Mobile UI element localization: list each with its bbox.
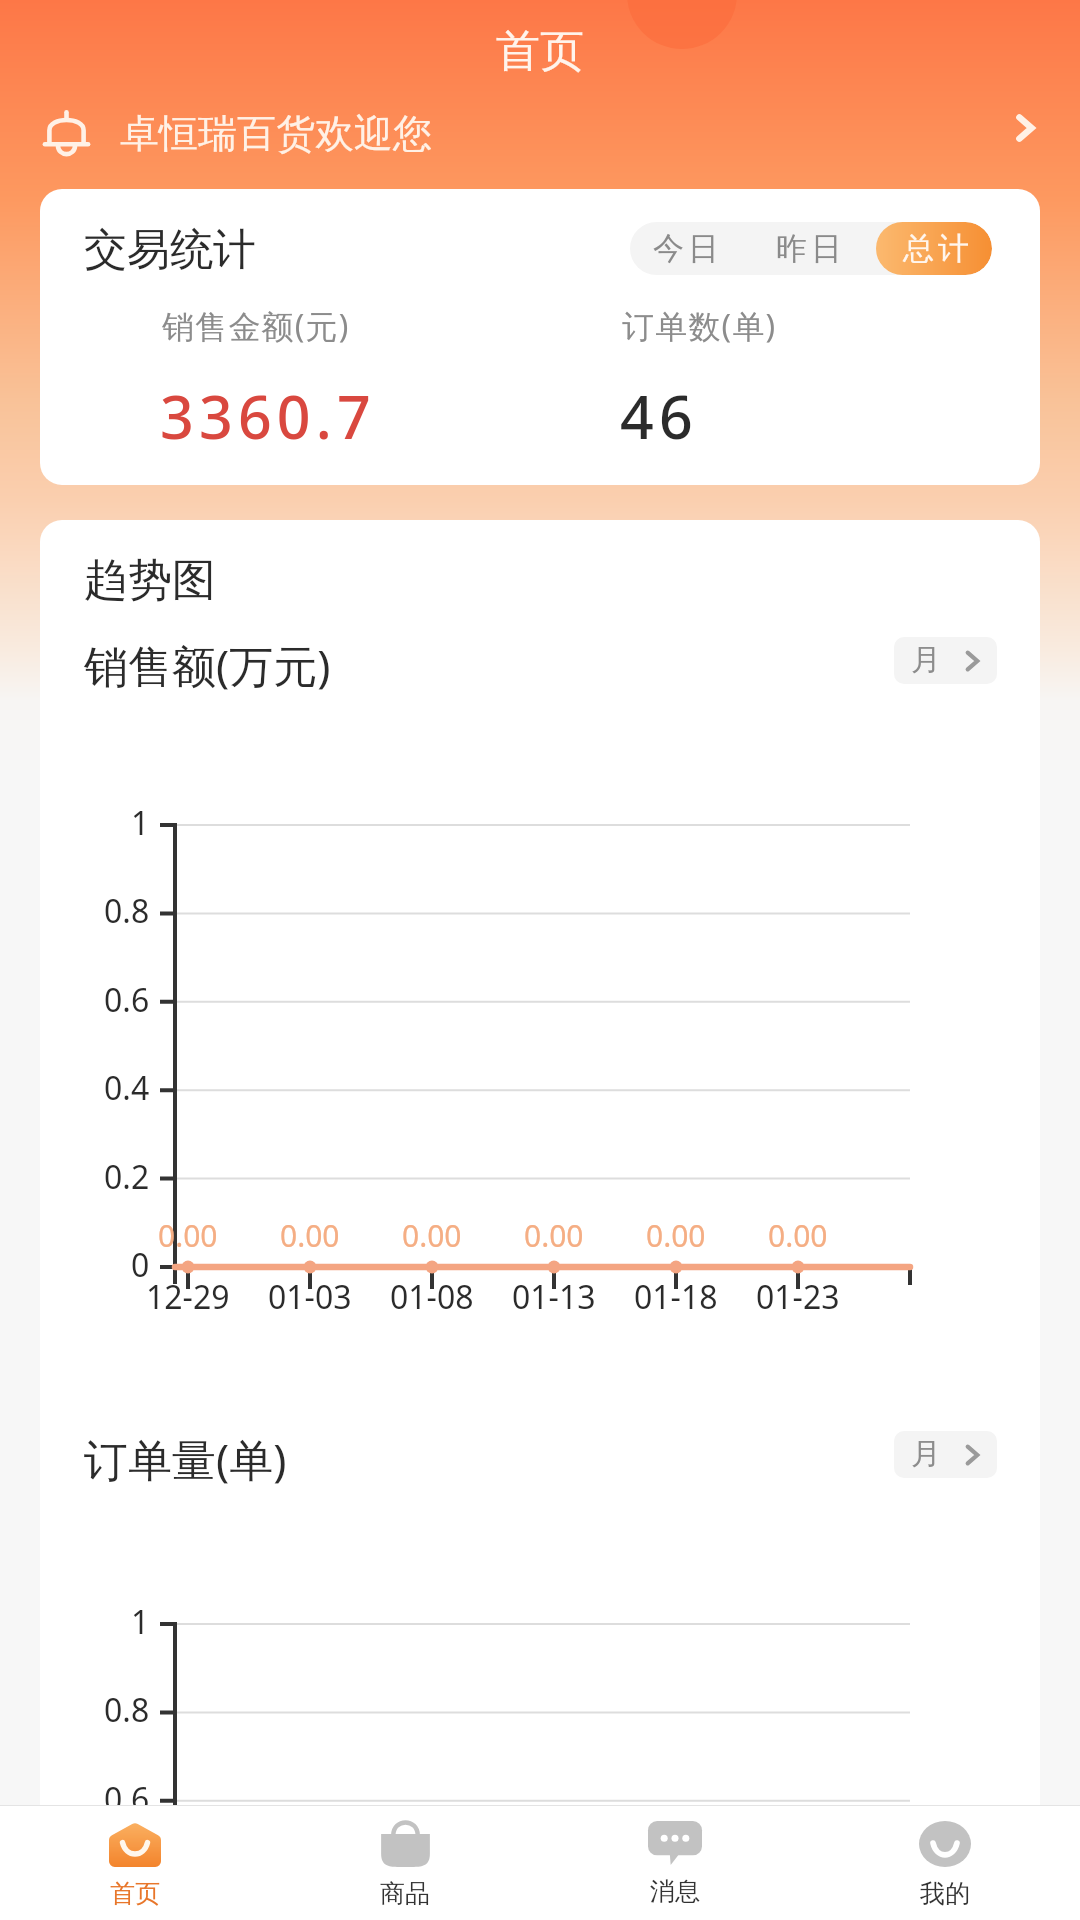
button[interactable]: 首页 <box>0 1806 270 1920</box>
staticText: 01-13 <box>512 1275 596 1319</box>
staticText: 首页 <box>110 1878 160 1909</box>
staticText: 12-29 <box>146 1275 230 1319</box>
staticText: 0.00 <box>646 1215 706 1256</box>
staticText: 3360.7 <box>160 376 376 456</box>
staticText: 0.00 <box>768 1215 828 1256</box>
staticText: 0.00 <box>280 1215 340 1256</box>
staticText: 今日 <box>651 229 721 268</box>
staticText: 0.8 <box>104 889 150 933</box>
staticText: 0.6 <box>104 1777 150 1821</box>
staticText: 0 <box>131 1243 150 1287</box>
other: Notifications <box>44 110 89 154</box>
button[interactable]: Notifications <box>0 96 1080 189</box>
staticText: 01-08 <box>390 1275 474 1319</box>
staticText: 我的 <box>920 1878 970 1909</box>
staticText: 订单数(单) <box>622 304 777 348</box>
staticText: 交易统计 <box>84 223 256 277</box>
button[interactable]: 总计 <box>876 222 992 275</box>
staticText: 0.6 <box>104 978 150 1022</box>
staticText: 1 <box>131 801 150 845</box>
staticText: 0.2 <box>104 1155 150 1199</box>
button[interactable]: 我的 <box>810 1806 1080 1920</box>
button[interactable]: Select month <box>894 637 997 684</box>
staticText: 0.00 <box>402 1215 462 1256</box>
staticText: 0.4 <box>104 1865 150 1909</box>
button[interactable]: 消息 <box>540 1806 810 1920</box>
staticText: 01-23 <box>756 1275 840 1319</box>
staticText: 0.00 <box>524 1215 584 1256</box>
staticText: 首页 <box>496 24 584 79</box>
staticText: 0.8 <box>104 1688 150 1732</box>
staticText: 卓恒瑞百货欢迎您 <box>120 109 432 158</box>
staticText: 趋势图 <box>84 553 216 608</box>
staticText: 昨日 <box>774 229 844 268</box>
button[interactable]: Select month <box>894 1431 997 1478</box>
button[interactable]: 今日 <box>630 222 754 275</box>
other: Open shop details <box>1016 114 1035 142</box>
button[interactable]: 昨日 <box>754 222 876 275</box>
staticText: 销售金额(元) <box>162 304 350 348</box>
staticText: 01-18 <box>634 1275 718 1319</box>
staticText: 01-03 <box>268 1275 352 1319</box>
staticText: 总计 <box>901 229 971 268</box>
button[interactable]: 商品 <box>270 1806 540 1920</box>
staticText: 月 <box>911 1435 941 1473</box>
staticText: 46 <box>620 376 698 456</box>
staticText: 消息 <box>650 1876 700 1907</box>
staticText: 0.00 <box>158 1215 218 1256</box>
staticText: 月 <box>911 641 941 679</box>
staticText: 商品 <box>380 1878 430 1909</box>
staticText: 订单量(单) <box>84 1429 287 1489</box>
staticText: 销售额(万元) <box>84 635 331 695</box>
staticText: 0.4 <box>104 1066 150 1110</box>
staticText: 1 <box>131 1600 150 1644</box>
